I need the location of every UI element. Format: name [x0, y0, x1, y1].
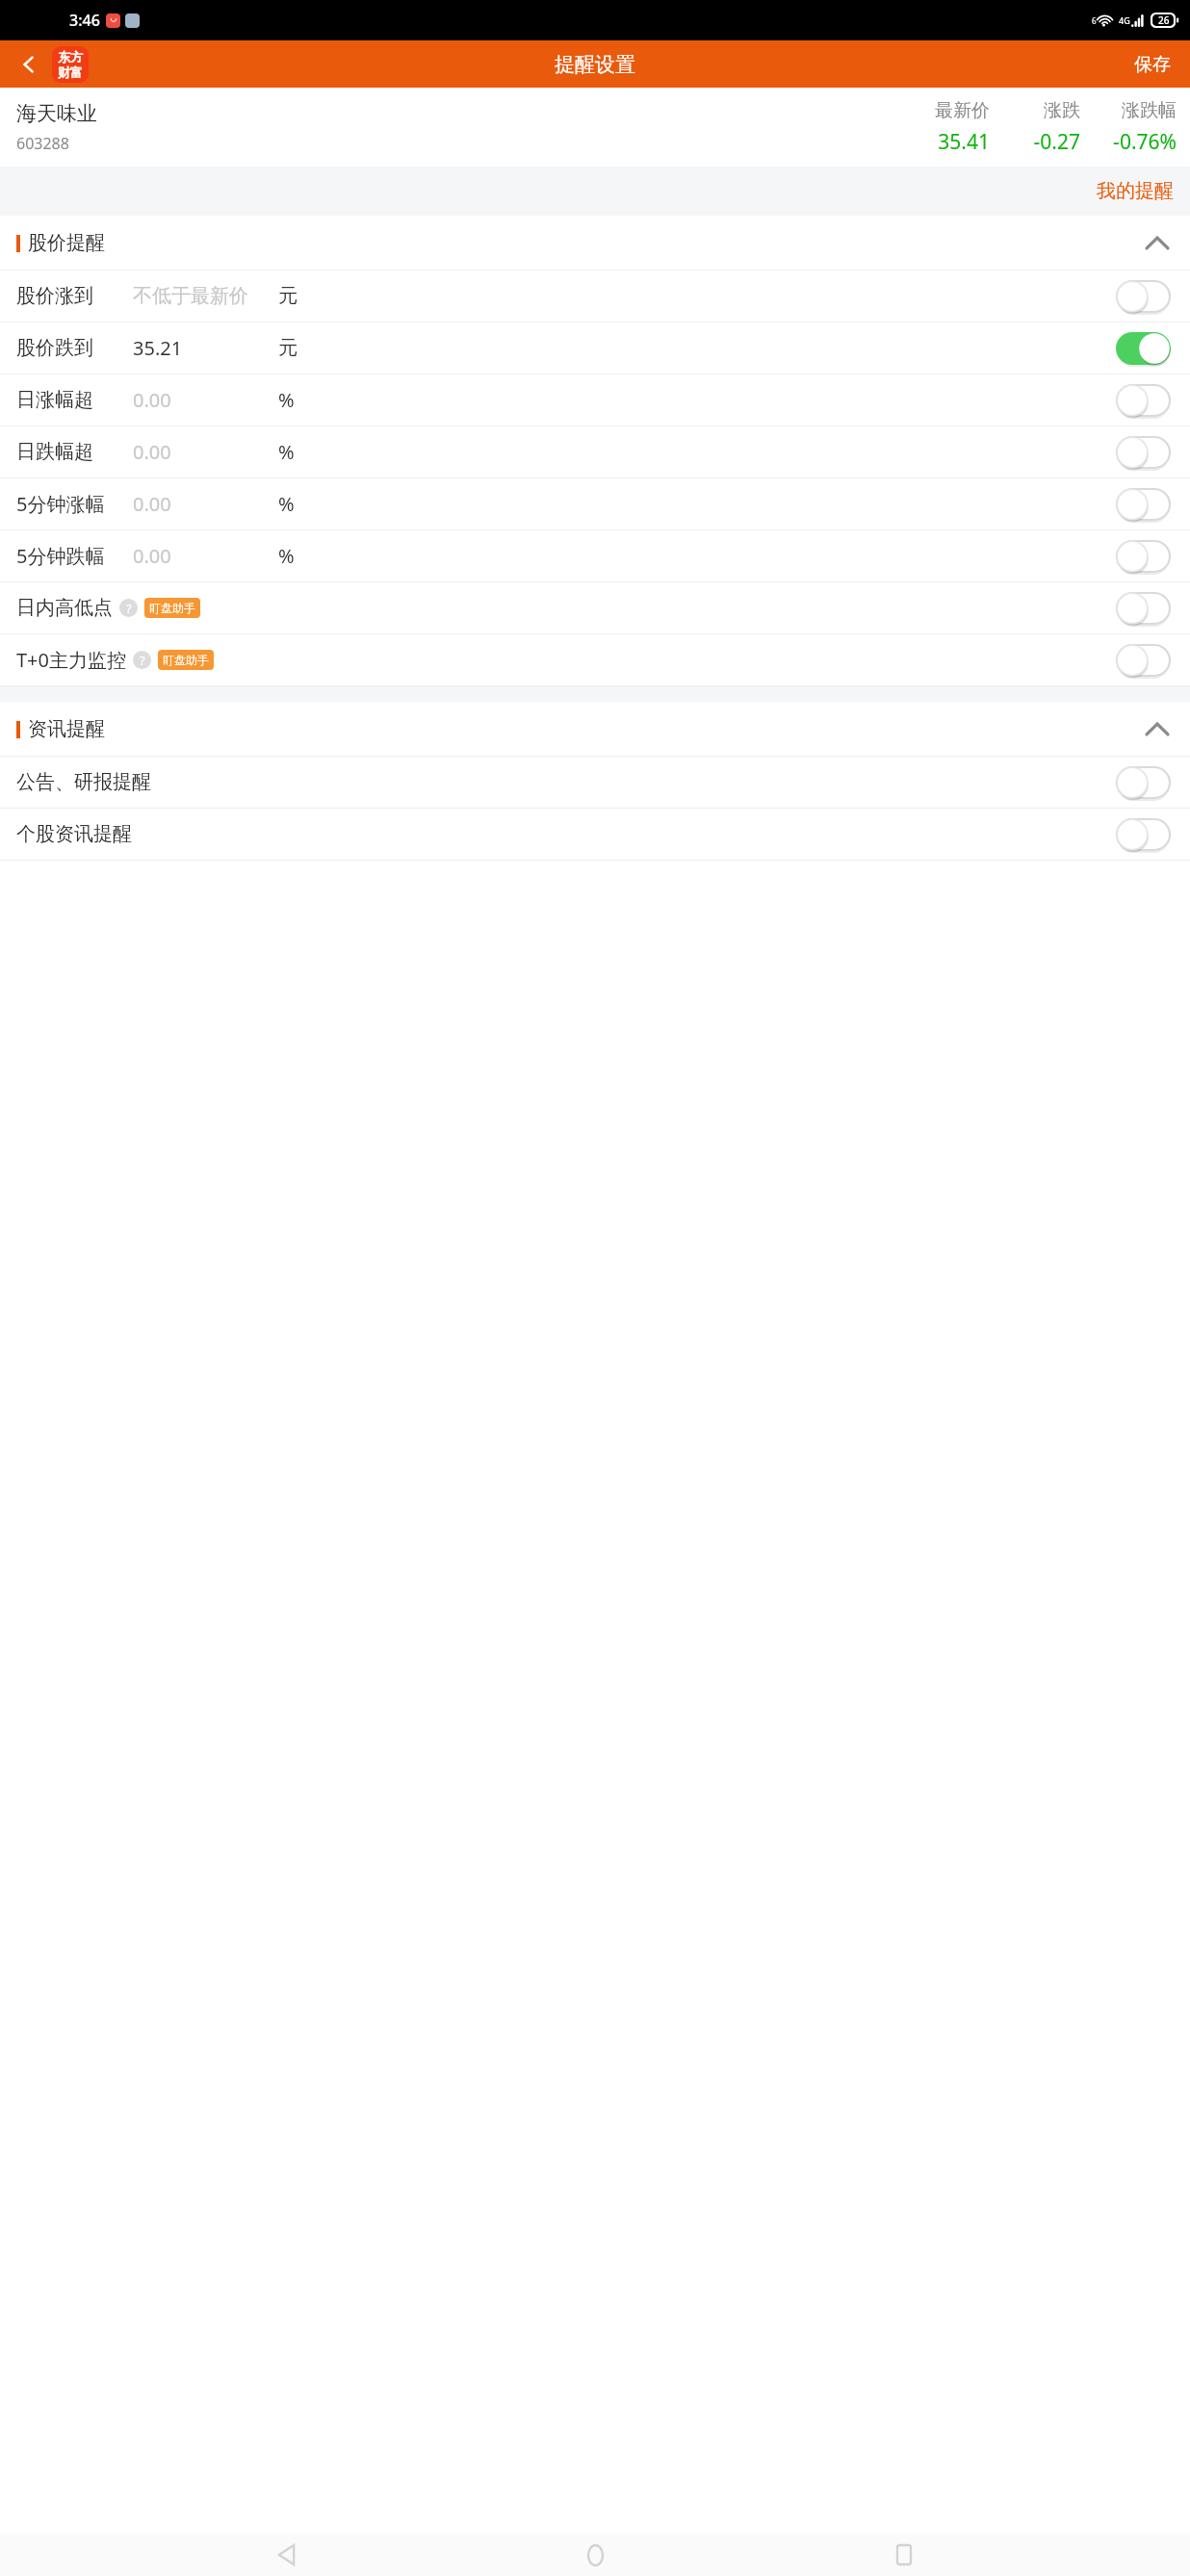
- button[interactable]: 股价跌到: [0, 322, 1190, 374]
- staticText: ?: [126, 600, 132, 617]
- button[interactable]: 我的提醒: [1080, 167, 1190, 216]
- staticText: ?: [140, 652, 145, 669]
- staticText: 26: [1158, 13, 1170, 27]
- button[interactable]: 返回: [263, 2534, 309, 2576]
- button[interactable]: 日跌幅超: [0, 426, 1190, 477]
- staticText: 股价提醒: [28, 231, 105, 255]
- staticText: 保存: [1134, 53, 1171, 76]
- staticText: 0.00: [133, 439, 171, 465]
- staticText: 个股资讯提醒: [16, 822, 132, 846]
- button[interactable]: 打开开关: [1116, 644, 1171, 677]
- button[interactable]: 返回: [6, 41, 52, 88]
- button[interactable]: 关闭开关: [1116, 332, 1171, 365]
- button[interactable]: 个股资讯提醒: [0, 809, 1190, 860]
- button[interactable]: 股价提醒: [0, 216, 1190, 270]
- staticText: 4G: [1119, 14, 1130, 26]
- staticText: %: [278, 387, 295, 413]
- button[interactable]: 日涨幅超: [0, 374, 1190, 425]
- button[interactable]: 打开开关: [1116, 384, 1171, 417]
- staticText: 元: [278, 336, 297, 360]
- staticText: 股价涨到: [16, 284, 93, 308]
- staticText: 日跌幅超: [16, 440, 93, 464]
- staticText: 涨跌幅: [1122, 99, 1177, 122]
- staticText: 财富: [58, 64, 83, 80]
- button[interactable]: 打开开关: [1116, 818, 1171, 851]
- staticText: 不低于最新价: [133, 284, 248, 308]
- button[interactable]: 日内高低点: [0, 582, 1190, 633]
- staticText: %: [278, 439, 295, 465]
- staticText: 最新价: [935, 99, 990, 122]
- button[interactable]: 保存: [1115, 40, 1190, 88]
- button[interactable]: 打开开关: [1116, 592, 1171, 625]
- button[interactable]: 打开开关: [1116, 766, 1171, 799]
- staticText: 5分钟跌幅: [16, 543, 105, 569]
- other: 折叠: [1147, 723, 1168, 735]
- button[interactable]: 打开开关: [1116, 488, 1171, 521]
- button[interactable]: 股价涨到: [0, 270, 1190, 322]
- staticText: 0.00: [133, 491, 171, 517]
- button[interactable]: T+0主力监控: [0, 634, 1190, 685]
- staticText: 6: [1092, 15, 1097, 26]
- staticText: %: [278, 543, 295, 569]
- button[interactable]: 资讯提醒: [0, 702, 1190, 756]
- staticText: 资讯提醒: [28, 717, 105, 741]
- staticText: 3:46: [69, 10, 100, 31]
- button[interactable]: 最近任务: [881, 2534, 927, 2576]
- button[interactable]: 5分钟涨幅: [0, 478, 1190, 529]
- staticText: 股价跌到: [16, 336, 93, 360]
- staticText: -0.27: [1033, 128, 1080, 156]
- staticText: 35.41: [938, 128, 990, 156]
- staticText: -0.76%: [1113, 128, 1177, 156]
- staticText: 海天味业: [16, 101, 97, 126]
- button[interactable]: 东方财富: [52, 46, 89, 83]
- staticText: %: [278, 491, 295, 517]
- staticText: T+0主力监控: [16, 647, 126, 673]
- button[interactable]: 打开开关: [1116, 280, 1171, 313]
- button[interactable]: 打开开关: [1116, 540, 1171, 573]
- staticText: 603288: [16, 133, 69, 154]
- staticText: 元: [278, 284, 297, 308]
- button[interactable]: 公告、研报提醒: [0, 757, 1190, 808]
- staticText: 东方: [58, 49, 83, 64]
- staticText: 日内高低点: [16, 596, 113, 620]
- button[interactable]: 主页: [572, 2534, 618, 2576]
- button[interactable]: 打开开关: [1116, 436, 1171, 469]
- staticText: 35.21: [133, 335, 183, 361]
- staticText: 盯盘助手: [163, 653, 209, 667]
- other: 折叠: [1147, 237, 1168, 249]
- staticText: 0.00: [133, 387, 171, 413]
- staticText: 涨跌: [1044, 99, 1080, 122]
- staticText: 0.00: [133, 543, 171, 569]
- staticText: 提醒设置: [555, 52, 635, 77]
- button[interactable]: 5分钟跌幅: [0, 530, 1190, 581]
- staticText: 日涨幅超: [16, 388, 93, 412]
- staticText: 5分钟涨幅: [16, 491, 105, 517]
- staticText: 公告、研报提醒: [16, 770, 151, 794]
- staticText: 盯盘助手: [149, 601, 195, 615]
- staticText: 我的提醒: [1097, 179, 1174, 203]
